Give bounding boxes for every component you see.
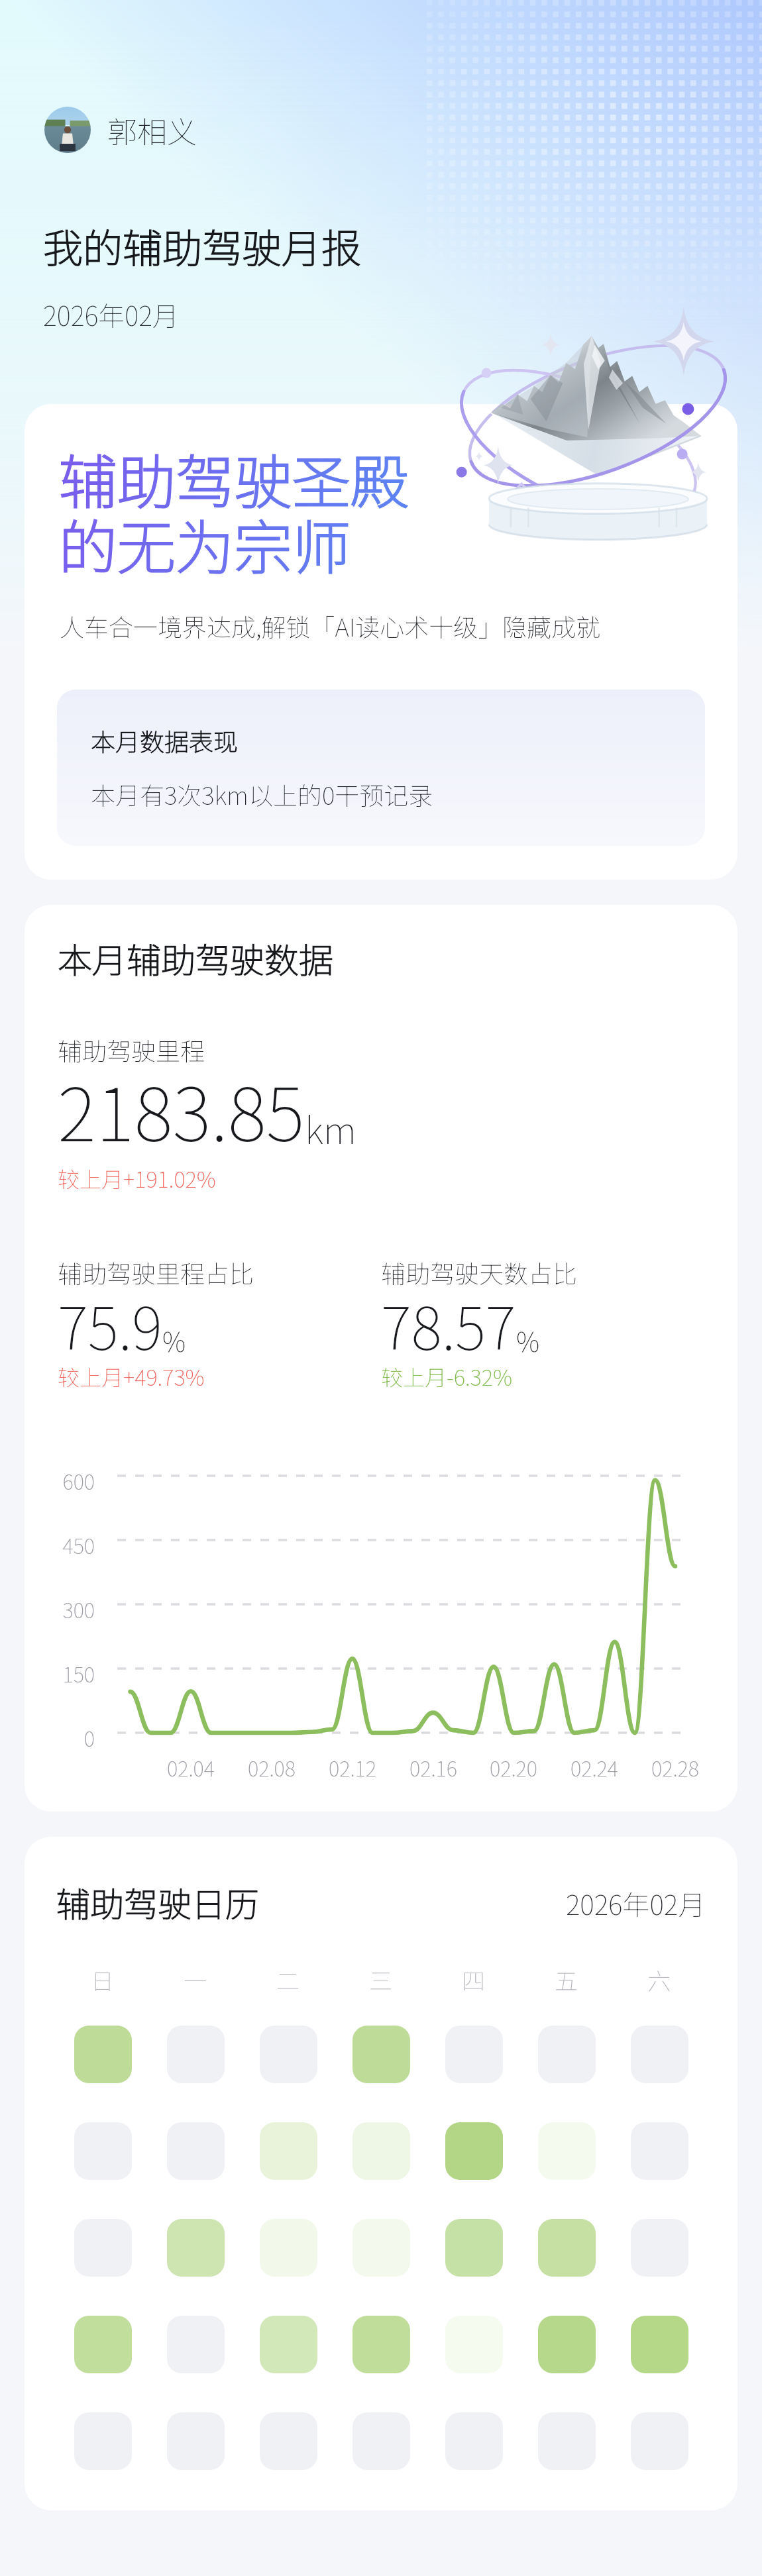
- staticText: 0: [28, 1723, 95, 1753]
- staticText: 郭相义: [107, 109, 197, 152]
- button[interactable]: [74, 2219, 132, 2277]
- button[interactable]: [631, 2026, 688, 2083]
- button[interactable]: [260, 2316, 317, 2373]
- button[interactable]: [445, 2412, 503, 2470]
- staticText: 78.57: [381, 1282, 516, 1366]
- button[interactable]: [538, 2219, 596, 2277]
- button[interactable]: [167, 2219, 225, 2277]
- button[interactable]: [167, 2026, 225, 2083]
- staticText: 02.08: [232, 1753, 311, 1782]
- button[interactable]: [631, 2219, 688, 2277]
- staticText: 我的辅助驾驶月报: [43, 217, 361, 274]
- button[interactable]: [260, 2412, 317, 2470]
- button[interactable]: [74, 2316, 132, 2373]
- button[interactable]: [631, 2412, 688, 2470]
- button[interactable]: [74, 2026, 132, 2083]
- staticText: km: [305, 1101, 356, 1155]
- staticText: 02.16: [394, 1753, 473, 1782]
- staticText: 02.20: [474, 1753, 553, 1782]
- staticText: 四: [462, 1963, 486, 1996]
- button[interactable]: [74, 2122, 132, 2180]
- staticText: 02.28: [635, 1753, 715, 1782]
- button[interactable]: 郭相义: [40, 107, 197, 153]
- button[interactable]: [445, 2219, 503, 2277]
- staticText: %: [162, 1321, 186, 1360]
- staticText: 五: [555, 1963, 578, 1996]
- staticText: 辅助驾驶日历: [56, 1878, 260, 1927]
- button[interactable]: [445, 2026, 503, 2083]
- button[interactable]: [538, 2122, 596, 2180]
- button[interactable]: [445, 2122, 503, 2180]
- staticText: 辅助驾驶圣殿 的无为宗师: [59, 436, 409, 586]
- staticText: 较上月+191.02%: [58, 1162, 216, 1194]
- staticText: 02.12: [313, 1753, 392, 1782]
- staticText: 本月有3次3km以上的0干预记录: [91, 776, 433, 812]
- button[interactable]: [167, 2122, 225, 2180]
- button[interactable]: [631, 2316, 688, 2373]
- staticText: 300: [28, 1594, 95, 1624]
- staticText: 辅助驾驶天数占比: [381, 1255, 577, 1290]
- button[interactable]: [74, 2412, 132, 2470]
- staticText: 本月数据表现: [91, 723, 238, 758]
- button[interactable]: [260, 2122, 317, 2180]
- button[interactable]: [260, 2026, 317, 2083]
- button[interactable]: [353, 2026, 410, 2083]
- staticText: 一: [184, 1963, 207, 1996]
- staticText: 二: [276, 1963, 300, 1996]
- button[interactable]: [353, 2122, 410, 2180]
- button[interactable]: [353, 2316, 410, 2373]
- staticText: 150: [28, 1659, 95, 1688]
- button[interactable]: [445, 2316, 503, 2373]
- button[interactable]: [631, 2122, 688, 2180]
- staticText: 辅助驾驶里程占比: [58, 1255, 254, 1290]
- staticText: 2183.85: [58, 1056, 305, 1162]
- staticText: 75.9: [58, 1282, 162, 1366]
- staticText: 2026年02月: [43, 295, 180, 334]
- staticText: 本月辅助驾驶数据: [58, 933, 334, 983]
- staticText: 人车合一境界达成,解锁「AI读心术十级」隐藏成就: [60, 608, 601, 644]
- staticText: 六: [647, 1963, 671, 1996]
- button[interactable]: [538, 2412, 596, 2470]
- staticText: 日: [91, 1963, 115, 1996]
- staticText: 02.24: [555, 1753, 634, 1782]
- staticText: 三: [369, 1963, 393, 1996]
- staticText: 辅助驾驶里程: [58, 1032, 205, 1068]
- button[interactable]: [353, 2219, 410, 2277]
- button[interactable]: [353, 2412, 410, 2470]
- staticText: 02.04: [151, 1753, 231, 1782]
- staticText: 较上月+49.73%: [58, 1361, 205, 1392]
- staticText: %: [516, 1321, 540, 1360]
- button[interactable]: [167, 2316, 225, 2373]
- staticText: 600: [28, 1466, 95, 1496]
- button[interactable]: [260, 2219, 317, 2277]
- button[interactable]: [538, 2026, 596, 2083]
- button[interactable]: [538, 2316, 596, 2373]
- button[interactable]: [167, 2412, 225, 2470]
- staticText: 较上月-6.32%: [381, 1361, 512, 1392]
- staticText: 450: [28, 1530, 95, 1560]
- staticText: 2026年02月: [566, 1883, 706, 1922]
